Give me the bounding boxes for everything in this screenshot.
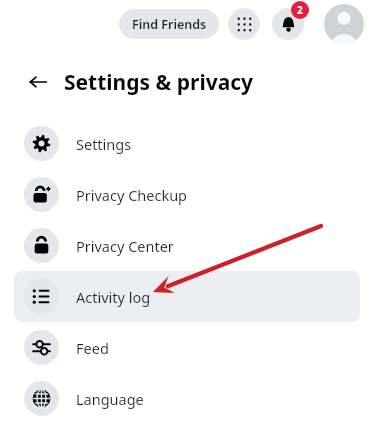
button[interactable]: Language (14, 373, 360, 424)
staticText: Language (76, 389, 144, 409)
button[interactable]: Privacy Checkup (14, 169, 360, 220)
button[interactable]: Back (22, 66, 54, 98)
button[interactable]: Profile (324, 4, 364, 44)
button[interactable]: Notifications (272, 8, 304, 40)
button[interactable]: Privacy Center (14, 220, 360, 271)
staticText: Find Friends (132, 16, 207, 33)
button[interactable]: Settings (14, 118, 360, 169)
button[interactable]: Feed (14, 322, 360, 373)
staticText: Feed (76, 338, 109, 358)
button[interactable]: Menu (228, 8, 260, 40)
staticText: Privacy Checkup (76, 185, 188, 205)
staticText: Settings (76, 134, 132, 154)
button[interactable]: Find Friends (119, 9, 219, 39)
staticText: Activity log (76, 287, 151, 307)
staticText: Privacy Center (76, 236, 174, 256)
staticText: Settings & privacy (64, 68, 254, 97)
staticText: 2 (297, 3, 303, 17)
button[interactable]: Activity log (14, 271, 360, 322)
